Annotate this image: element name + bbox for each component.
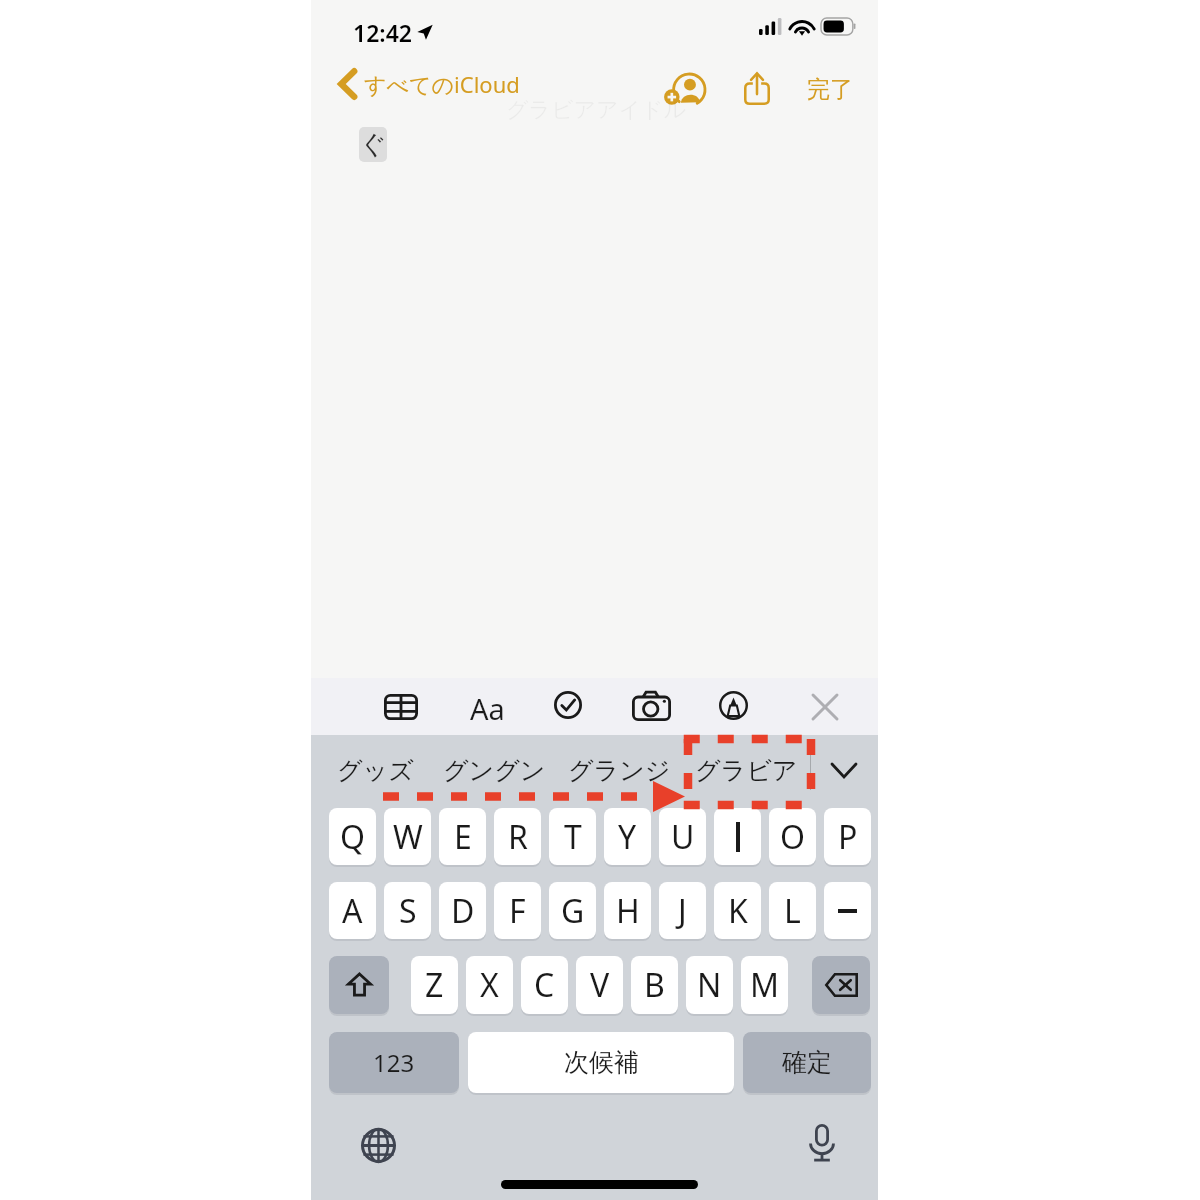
button[interactable]: S [384, 882, 431, 939]
staticText: K [728, 889, 748, 933]
staticText: T [564, 815, 582, 859]
button[interactable]: Switch keyboard [357, 1124, 399, 1166]
staticText: グラビアアイドル [506, 96, 687, 124]
staticText: W [393, 815, 423, 859]
button[interactable]: Aa [470, 689, 505, 723]
button[interactable]: グラビア [695, 747, 798, 793]
staticText: C [534, 963, 555, 1007]
button[interactable] [714, 808, 761, 865]
button[interactable]: H [604, 882, 651, 939]
button[interactable]: O [769, 808, 816, 865]
button[interactable]: Camera [632, 690, 671, 722]
button[interactable]: 完了 [807, 63, 853, 115]
staticText: M [750, 963, 780, 1007]
staticText: S [399, 889, 417, 933]
button[interactable]: Z [411, 956, 458, 1014]
staticText: D [451, 889, 475, 933]
staticText: Y [618, 815, 637, 859]
button[interactable]: Add people [660, 63, 712, 115]
staticText: J [678, 889, 687, 933]
button[interactable]: Share [731, 62, 783, 114]
staticText: ぐ [360, 128, 387, 161]
staticText: N [697, 963, 722, 1007]
staticText: R [508, 815, 528, 859]
staticText: Z [425, 963, 444, 1007]
button[interactable]: A [329, 882, 376, 939]
button[interactable]: Dictation [801, 1122, 843, 1164]
button[interactable]: グングン [443, 747, 546, 793]
button[interactable]: Table [384, 691, 418, 722]
staticText: H [616, 889, 640, 933]
button[interactable]: G [549, 882, 596, 939]
button[interactable]: Close [812, 694, 837, 719]
staticText: F [509, 889, 526, 933]
staticText: 完了 [807, 75, 853, 104]
button[interactable]: Hide suggestions [824, 750, 864, 790]
button[interactable]: D [439, 882, 486, 939]
button[interactable]: グランジ [568, 747, 671, 793]
staticText: B [644, 963, 665, 1007]
staticText: X [480, 963, 499, 1007]
button[interactable]: Checklist [554, 691, 582, 719]
staticText: O [780, 815, 805, 859]
staticText: E [454, 815, 472, 859]
staticText: グラビア [695, 755, 798, 786]
button[interactable]: J [659, 882, 706, 939]
button[interactable]: Markup [719, 691, 748, 720]
button[interactable]: T [549, 808, 596, 865]
button[interactable]: L [769, 882, 816, 939]
staticText: 次候補 [564, 1047, 639, 1078]
button[interactable]: N [686, 956, 733, 1014]
staticText: P [838, 815, 858, 859]
staticText: 確定 [782, 1047, 832, 1078]
button[interactable]: Backspace [812, 956, 870, 1014]
button[interactable]: X [466, 956, 513, 1014]
staticText: Aa [470, 689, 505, 723]
staticText: G [561, 889, 585, 933]
button[interactable]: V [576, 956, 623, 1014]
button[interactable]: グッズ [337, 747, 414, 793]
button[interactable]: 次候補 [468, 1032, 734, 1093]
staticText: すべてのiCloud [364, 69, 520, 99]
button[interactable]: C [521, 956, 568, 1014]
staticText: グングン [443, 755, 546, 786]
staticText: Q [340, 815, 365, 859]
button[interactable]: U [659, 808, 706, 865]
button[interactable]: 123 [329, 1032, 459, 1093]
button[interactable]: M [741, 956, 788, 1014]
staticText: 12:42 [353, 17, 412, 48]
button[interactable]: W [384, 808, 431, 865]
button[interactable]: Shift [329, 956, 389, 1014]
button[interactable]: K [714, 882, 761, 939]
button[interactable]: 確定 [743, 1032, 871, 1093]
staticText: グランジ [568, 755, 671, 786]
button[interactable] [824, 882, 871, 939]
button[interactable]: B [631, 956, 678, 1014]
button[interactable]: F [494, 882, 541, 939]
staticText: グッズ [337, 755, 414, 786]
staticText: A [342, 889, 363, 933]
button[interactable]: Y [604, 808, 651, 865]
staticText: L [784, 889, 801, 933]
button[interactable]: Q [329, 808, 376, 865]
button[interactable]: R [494, 808, 541, 865]
button[interactable]: すべてのiCloud [337, 68, 520, 100]
button[interactable]: E [439, 808, 486, 865]
button[interactable]: P [824, 808, 871, 865]
staticText: 123 [373, 1046, 415, 1079]
staticText: U [671, 815, 695, 859]
staticText: V [590, 963, 610, 1007]
